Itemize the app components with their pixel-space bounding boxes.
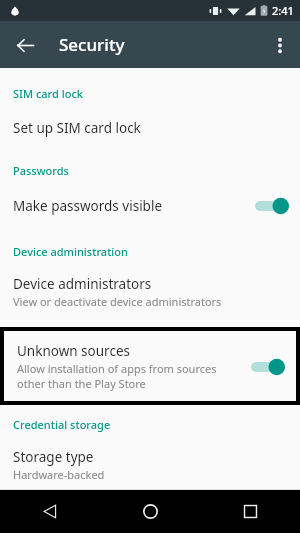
staticText: Allow installation of apps from sources	[17, 361, 217, 376]
staticText: Storage type	[13, 448, 94, 466]
staticText: Credential storage	[13, 417, 111, 432]
staticText: Device administration	[13, 244, 128, 259]
staticText: Set up SIM card lock	[13, 119, 141, 137]
button[interactable]: Back	[0, 490, 100, 533]
staticText: Device administrators	[13, 275, 152, 293]
staticText: View or deactivate device administrators	[13, 294, 222, 309]
button[interactable]: Recent apps	[200, 490, 300, 533]
button[interactable]: Set up SIM card lock	[0, 113, 300, 143]
staticText: other than the Play Store	[17, 376, 146, 391]
button[interactable]: Make passwords visible	[0, 188, 300, 224]
staticText: Passwords	[13, 163, 69, 178]
staticText: Hardware-backed	[13, 467, 105, 482]
staticText: Make passwords visible	[13, 197, 163, 215]
staticText: Unknown sources	[17, 342, 130, 360]
staticText: 2:41	[272, 3, 294, 18]
button[interactable]: Back	[8, 28, 42, 62]
button[interactable]: Toggle	[250, 355, 286, 379]
button[interactable]: Unknown sources	[4, 336, 296, 397]
button[interactable]: Storage type	[0, 442, 300, 488]
button[interactable]: Device administrators	[0, 269, 300, 315]
button[interactable]: Toggle	[254, 194, 290, 218]
button[interactable]: More options	[263, 28, 297, 62]
button[interactable]: Home	[100, 490, 200, 533]
staticText: Security	[59, 33, 125, 56]
staticText: SIM card lock	[13, 86, 83, 101]
